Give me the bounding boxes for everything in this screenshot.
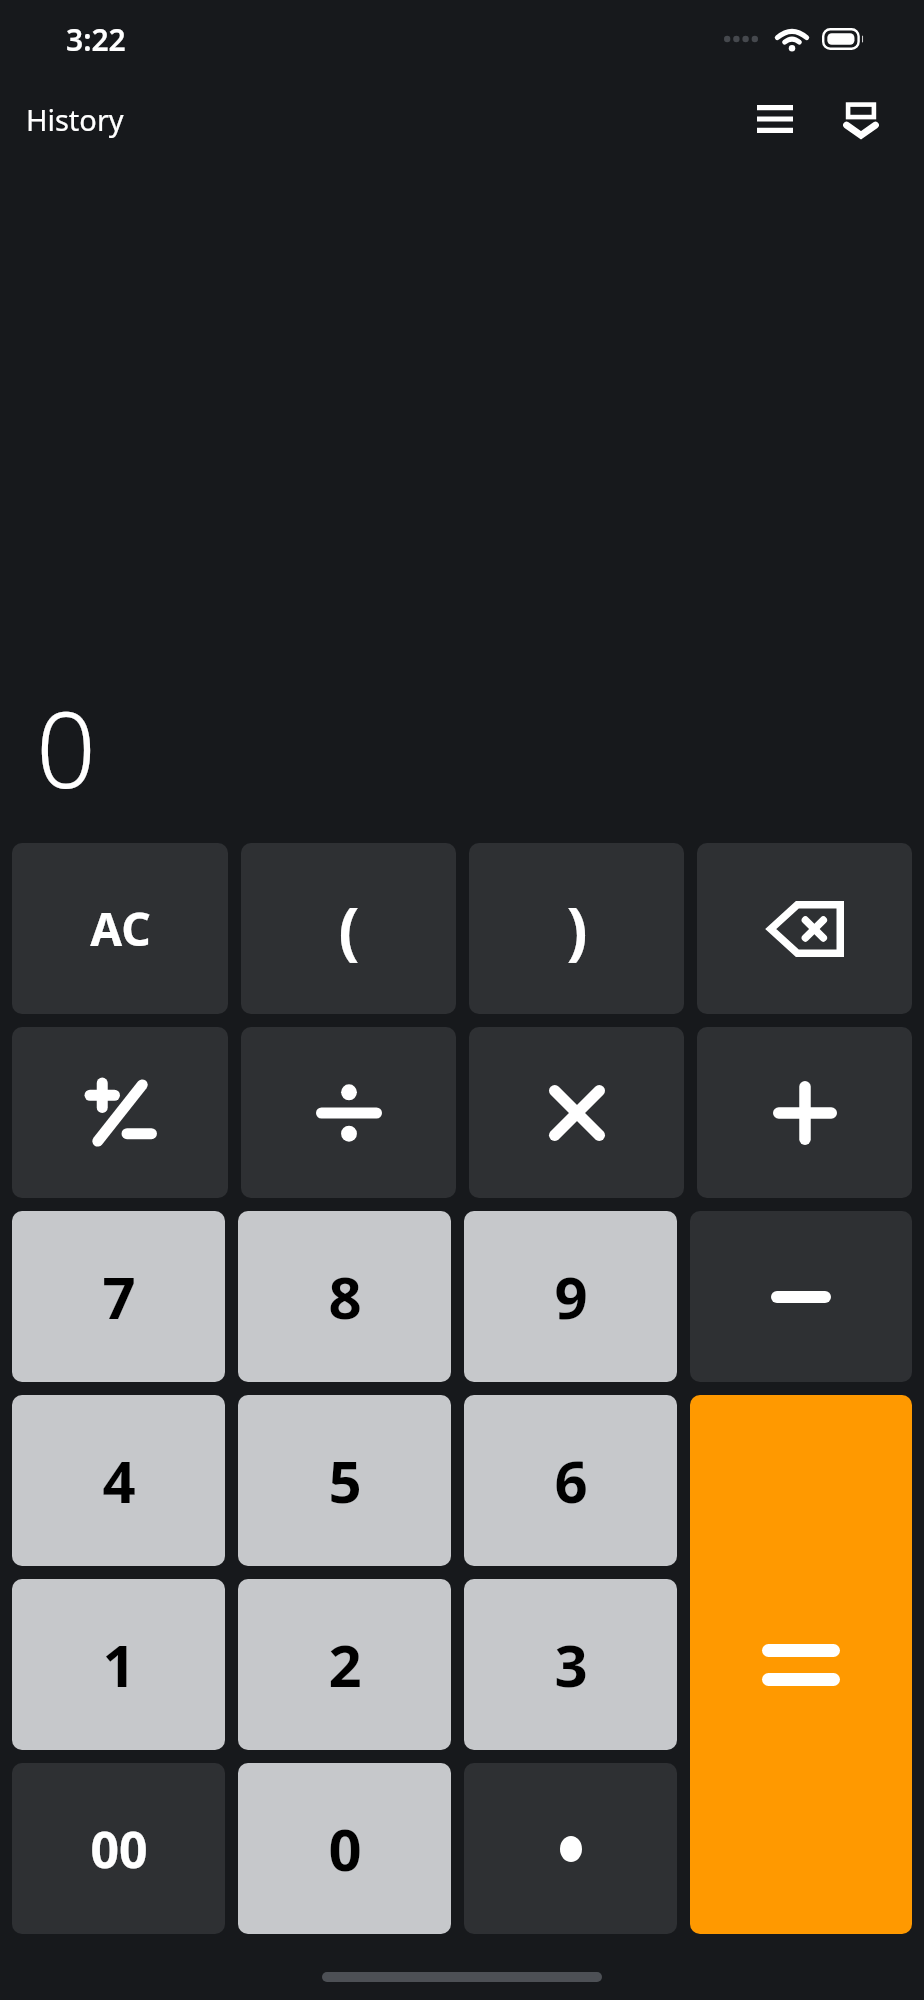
button[interactable]: 9 bbox=[464, 1211, 677, 1382]
button[interactable]: History bbox=[24, 92, 126, 147]
button[interactable]: Multiply bbox=[469, 1027, 684, 1198]
staticText: 1 bbox=[102, 1625, 136, 1704]
button[interactable]: Toggle sign bbox=[12, 1027, 228, 1198]
staticText: 2 bbox=[328, 1625, 362, 1704]
button[interactable]: 7 bbox=[12, 1211, 225, 1382]
staticText: 6 bbox=[554, 1441, 588, 1520]
button[interactable]: Close parenthesis bbox=[469, 843, 684, 1014]
staticText: History bbox=[26, 100, 124, 139]
staticText: 00 bbox=[90, 1815, 148, 1883]
staticText: 4 bbox=[102, 1441, 136, 1520]
button[interactable]: Open parenthesis bbox=[241, 843, 456, 1014]
staticText: 9 bbox=[554, 1257, 588, 1336]
button[interactable]: 3 bbox=[464, 1579, 677, 1750]
button[interactable]: Double zero bbox=[12, 1763, 225, 1934]
button[interactable]: Decimal point bbox=[464, 1763, 677, 1934]
staticText: ) bbox=[566, 887, 588, 971]
staticText: 3:22 bbox=[66, 19, 126, 60]
staticText: AC bbox=[90, 897, 151, 960]
button[interactable]: 6 bbox=[464, 1395, 677, 1566]
button[interactable]: Minus bbox=[690, 1211, 912, 1382]
button[interactable]: 2 bbox=[238, 1579, 451, 1750]
staticText: 0 bbox=[328, 1809, 362, 1888]
staticText: 8 bbox=[328, 1257, 362, 1336]
button[interactable]: 0 bbox=[238, 1763, 451, 1934]
staticText: 5 bbox=[328, 1441, 362, 1520]
button[interactable]: All clear bbox=[12, 843, 228, 1014]
button[interactable]: Plus bbox=[697, 1027, 912, 1198]
button[interactable]: 4 bbox=[12, 1395, 225, 1566]
staticText: 7 bbox=[102, 1257, 136, 1336]
staticText: 3 bbox=[554, 1625, 588, 1704]
button[interactable]: 5 bbox=[238, 1395, 451, 1566]
button[interactable]: Divide bbox=[241, 1027, 456, 1198]
button[interactable]: Menu bbox=[738, 82, 812, 156]
staticText: 0 bbox=[36, 676, 96, 819]
button[interactable]: Backspace bbox=[697, 843, 912, 1014]
button[interactable]: 1 bbox=[12, 1579, 225, 1750]
button[interactable]: Collapse keypad bbox=[824, 82, 898, 156]
button[interactable]: 8 bbox=[238, 1211, 451, 1382]
button[interactable]: Equals bbox=[690, 1395, 912, 1934]
staticText: ( bbox=[338, 887, 360, 971]
